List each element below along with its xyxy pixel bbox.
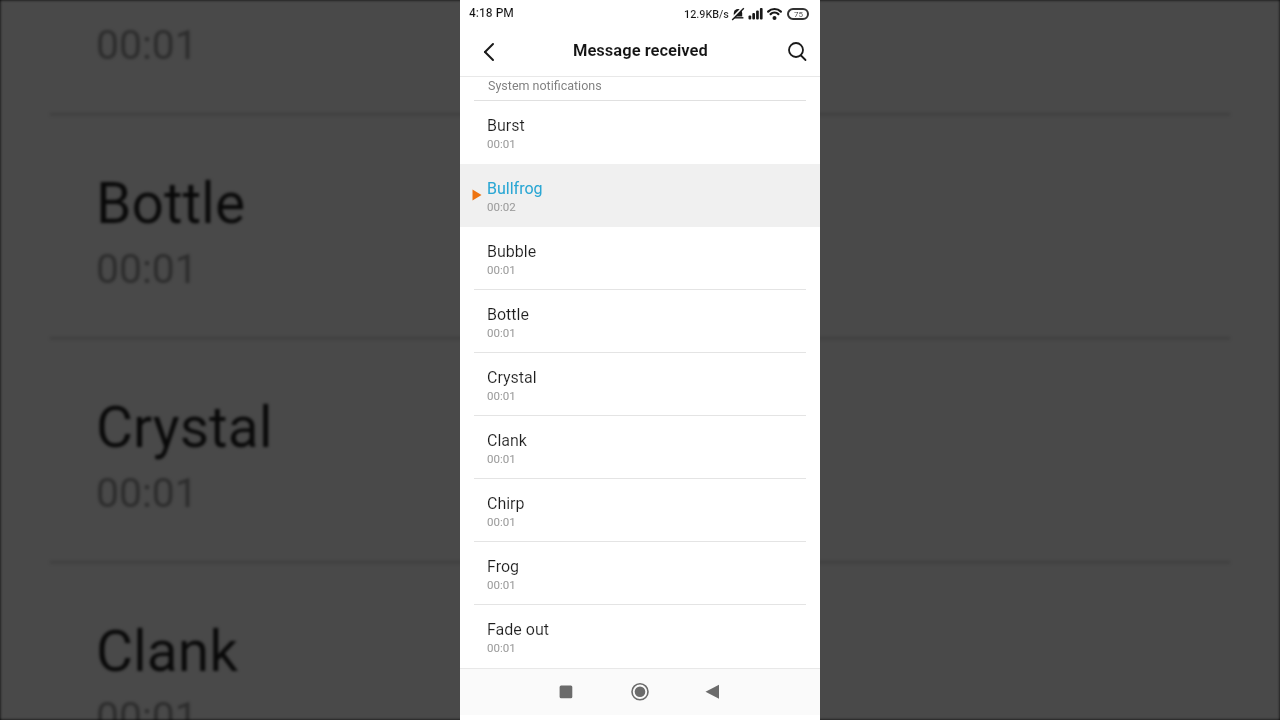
staticText: Bullfrog <box>487 179 543 198</box>
button[interactable] <box>460 27 504 77</box>
staticText: 75 <box>794 10 803 19</box>
button[interactable] <box>700 668 820 715</box>
staticText: 4:18 PM <box>469 6 514 20</box>
staticText: Bubble <box>96 0 274 13</box>
staticText: 00:02 <box>487 200 516 213</box>
staticText: Crystal <box>487 368 537 387</box>
staticText: 00:01 <box>487 263 516 276</box>
button[interactable]: Clank <box>460 416 820 479</box>
staticText: 00:01 <box>487 515 516 528</box>
staticText: 12.9KB/s <box>684 8 729 21</box>
staticText: 00:01 <box>487 578 516 591</box>
button[interactable]: Bullfrog <box>460 164 820 227</box>
button[interactable]: Bubble <box>0 0 1280 116</box>
staticText: 00:01 <box>487 641 516 654</box>
button[interactable] <box>776 27 820 77</box>
button[interactable]: Frog <box>460 542 820 605</box>
button[interactable]: Bottle <box>460 290 820 353</box>
staticText: 00:01 <box>487 452 516 465</box>
staticText: System notifications <box>488 78 602 93</box>
staticText: 00:01 <box>487 326 516 339</box>
button[interactable]: Crystal <box>460 353 820 416</box>
button[interactable]: Chirp <box>460 479 820 542</box>
staticText: 00:01 <box>487 389 516 402</box>
button[interactable]: Bubble <box>460 227 820 290</box>
staticText: Bottle <box>96 169 245 237</box>
staticText: Bubble <box>487 242 537 261</box>
staticText: Clank <box>487 431 527 450</box>
staticText: Message received <box>573 41 708 60</box>
staticText: Clank <box>96 617 238 685</box>
staticText: Frog <box>487 557 520 576</box>
staticText: Crystal <box>96 393 274 461</box>
button[interactable]: Fade out <box>460 605 820 668</box>
staticText: 00:01 <box>487 137 516 150</box>
button[interactable] <box>460 668 580 715</box>
staticText: 00:01 <box>96 692 199 720</box>
button[interactable] <box>580 668 700 715</box>
staticText: Burst <box>487 116 525 135</box>
button[interactable]: Crystal <box>0 340 1280 564</box>
button[interactable]: Bottle <box>0 116 1280 340</box>
staticText: 00:01 <box>96 468 199 514</box>
staticText: Bottle <box>487 305 529 324</box>
staticText: 00:01 <box>96 244 199 290</box>
button[interactable]: Clank <box>0 564 1280 720</box>
button[interactable]: Burst <box>460 101 820 164</box>
staticText: 00:01 <box>96 20 199 66</box>
staticText: Chirp <box>487 494 525 513</box>
staticText: Fade out <box>487 620 549 639</box>
